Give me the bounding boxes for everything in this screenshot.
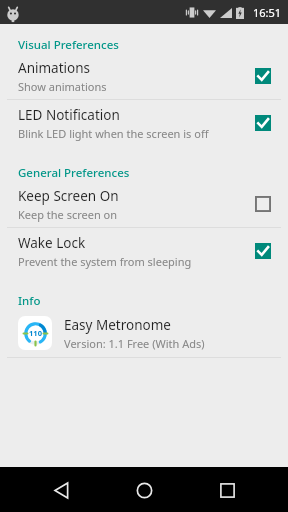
staticText: General Preferences [18,165,130,181]
staticText: Easy Metronome [64,316,171,334]
staticText: Show animations [18,79,107,94]
staticText: Version: 1.1 Free (With Ads) [64,336,205,351]
staticText: Blink LED light when the screen is off [18,126,209,141]
staticText: Visual Preferences [18,37,119,53]
button[interactable]: Checked [253,241,273,261]
button[interactable]: Wake Lock [0,228,288,274]
button[interactable]: Keep Screen On [0,181,288,227]
button[interactable]: Back [39,468,83,512]
staticText: Prevent the system from sleeping [18,254,192,269]
staticText: Animations [18,59,90,77]
staticText: LED Notification [18,106,120,124]
staticText: Wake Lock [18,234,86,252]
staticText: 110 [29,328,42,338]
button[interactable]: Home [122,468,166,512]
staticText: Keep Screen On [18,187,119,205]
button[interactable]: LED Notification [0,100,288,146]
button[interactable]: 110 [0,309,288,357]
button[interactable]: Checked [253,66,273,86]
button[interactable]: Checked [253,113,273,133]
staticText: 16:51 [253,5,282,20]
button[interactable]: Animations [0,53,288,99]
button[interactable]: Recent apps [205,468,249,512]
staticText: Keep the screen on [18,207,118,222]
staticText: Info [18,293,41,309]
button[interactable]: Unchecked [253,194,273,214]
